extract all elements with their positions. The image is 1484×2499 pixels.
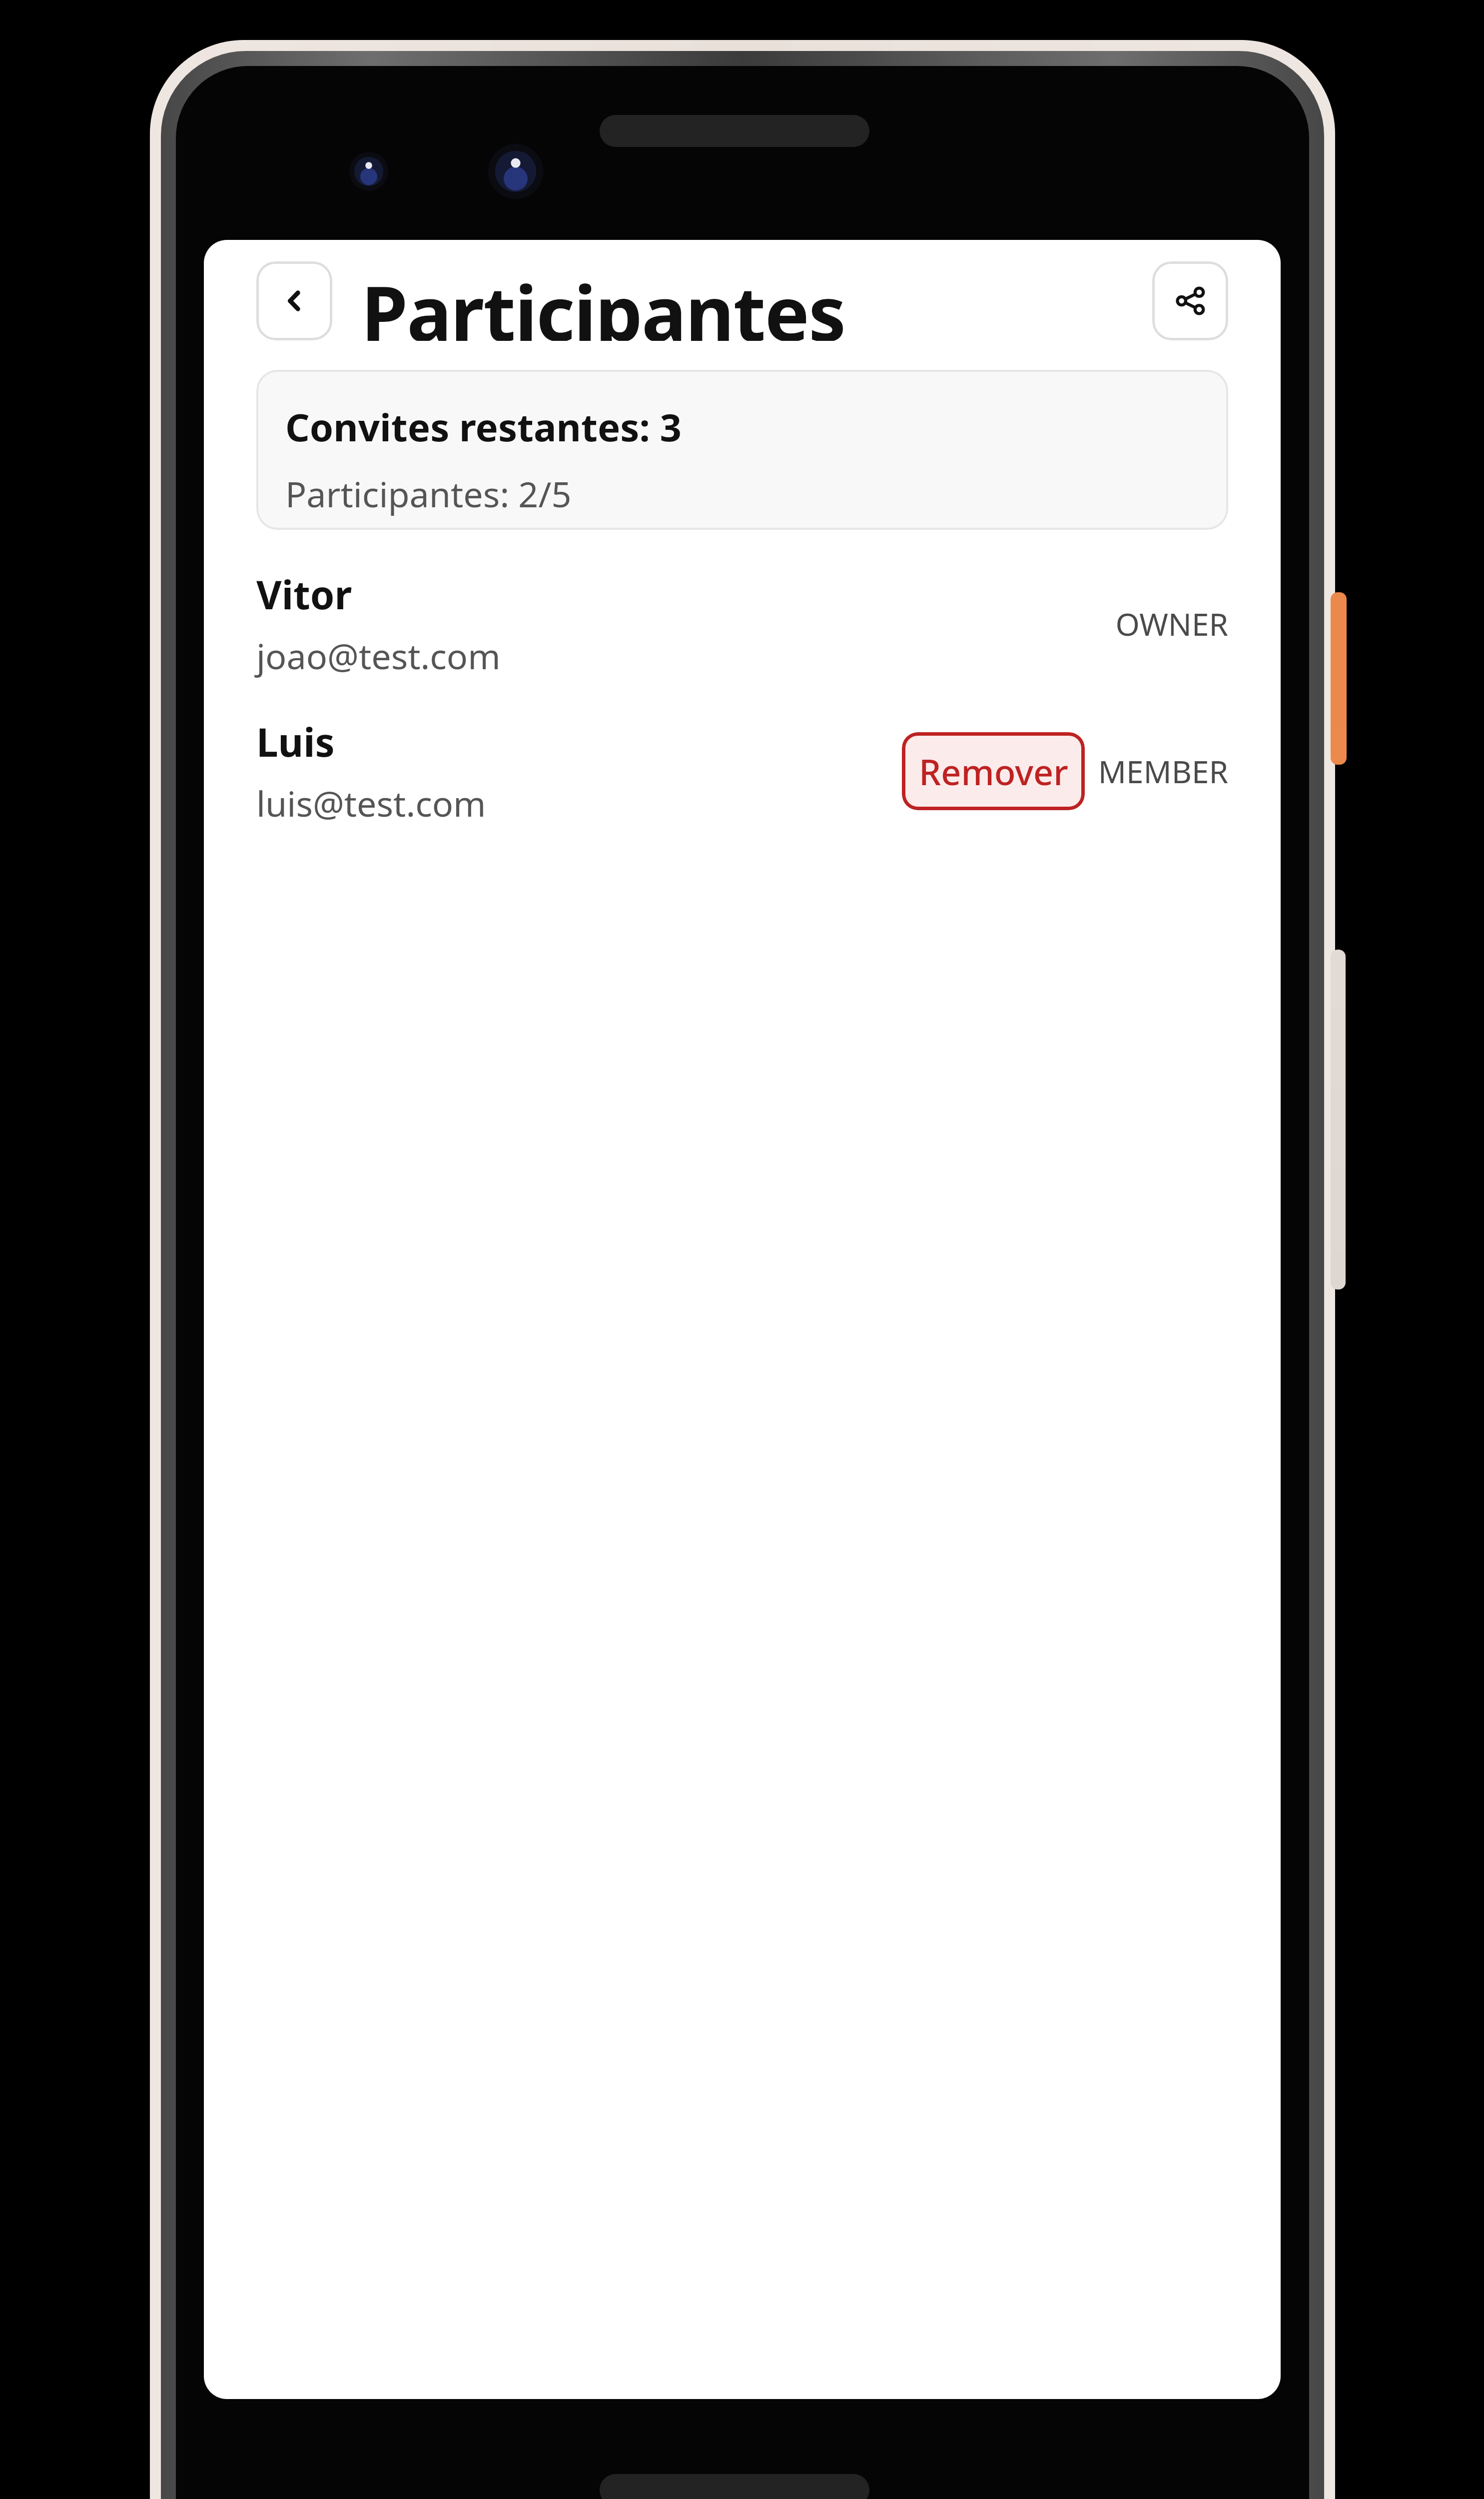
- staticText: Participantes: 2/5: [285, 470, 572, 517]
- staticText: joao@test.com: [256, 632, 501, 679]
- staticText: MEMBER: [1098, 750, 1228, 792]
- staticText: OWNER: [1115, 603, 1228, 645]
- staticText: Vitor: [256, 568, 352, 621]
- staticText: luis@test.com: [256, 779, 486, 827]
- staticText: Remover: [919, 748, 1068, 795]
- staticText: Participantes: [361, 261, 1152, 341]
- button[interactable]: Luis: [256, 715, 1228, 827]
- button[interactable]: Convites restantes: 3: [256, 370, 1228, 530]
- staticText: Convites restantes: 3: [285, 401, 682, 453]
- staticText: Luis: [256, 715, 335, 768]
- button[interactable]: Back: [256, 261, 332, 340]
- button[interactable]: Vitor: [256, 568, 1228, 679]
- button[interactable]: Remover: [902, 732, 1085, 810]
- button[interactable]: Share: [1152, 261, 1228, 340]
